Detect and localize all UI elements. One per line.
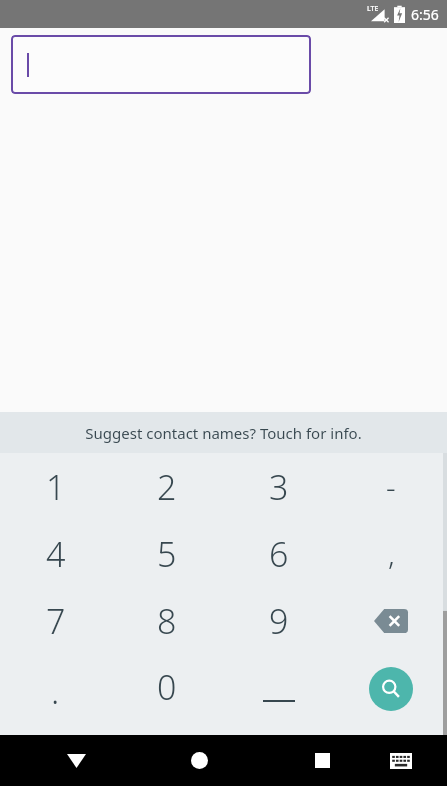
button[interactable]: 0: [111, 654, 223, 735]
staticText: LTE: [367, 4, 379, 14]
button[interactable]: [11, 35, 311, 94]
staticText: ,: [388, 533, 395, 574]
staticText: 0: [157, 664, 177, 710]
button[interactable]: -: [335, 453, 447, 520]
staticText: Suggest contact names? Touch for info.: [85, 423, 362, 443]
button[interactable]: 7: [0, 587, 111, 654]
staticText: -: [386, 466, 396, 507]
staticText: 2: [157, 464, 177, 510]
staticText: 5: [157, 531, 177, 577]
button[interactable]: Suggest contact names? Touch for info.: [0, 412, 447, 453]
button[interactable]: Space: [223, 654, 335, 735]
staticText: 6:56: [411, 5, 439, 24]
button[interactable]: Search: [335, 654, 447, 735]
staticText: 7: [46, 598, 66, 644]
button[interactable]: Switch keyboard: [375, 735, 427, 786]
button[interactable]: 2: [111, 453, 223, 520]
button[interactable]: Home: [173, 735, 225, 786]
staticText: .: [51, 668, 60, 714]
button[interactable]: 4: [0, 520, 111, 587]
button[interactable]: 3: [223, 453, 335, 520]
staticText: 8: [157, 598, 177, 644]
button[interactable]: .: [0, 654, 111, 735]
staticText: 6: [269, 531, 289, 577]
staticText: 9: [269, 598, 289, 644]
staticText: 4: [46, 531, 66, 577]
button[interactable]: ,: [335, 520, 447, 587]
staticText: 3: [269, 464, 289, 510]
button[interactable]: Back: [50, 735, 102, 786]
button[interactable]: 1: [0, 453, 111, 520]
button[interactable]: Backspace: [335, 587, 447, 654]
button[interactable]: Recent apps: [296, 735, 348, 786]
button[interactable]: 6: [223, 520, 335, 587]
staticText: 1: [46, 464, 66, 510]
button[interactable]: 5: [111, 520, 223, 587]
button[interactable]: 9: [223, 587, 335, 654]
button[interactable]: 8: [111, 587, 223, 654]
